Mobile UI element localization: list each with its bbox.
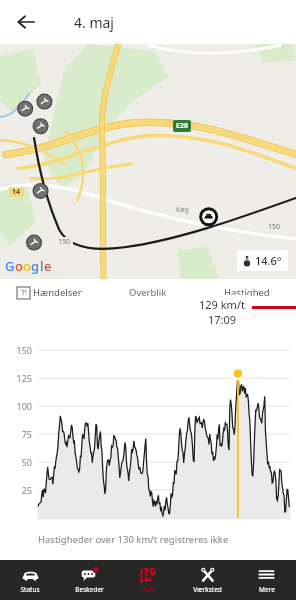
- button[interactable]: Ture: [119, 560, 178, 600]
- staticText: 14: [12, 187, 21, 197]
- staticText: Hændelser: [33, 286, 82, 299]
- button[interactable]: Status: [0, 560, 60, 600]
- staticText: g: [31, 257, 40, 275]
- staticText: 129 km/t: [199, 297, 245, 312]
- staticText: 150: [268, 222, 281, 232]
- staticText: 25: [8, 484, 32, 496]
- button[interactable]: Mere: [237, 560, 296, 600]
- staticText: 7!: [21, 288, 27, 298]
- staticText: Ture: [142, 585, 156, 594]
- staticText: 14.6°: [255, 253, 282, 268]
- staticText: E20: [176, 121, 188, 131]
- button[interactable]: Back: [8, 4, 44, 40]
- staticText: o: [23, 257, 31, 275]
- button[interactable]: 7!: [0, 279, 98, 306]
- staticText: 150: [58, 237, 71, 247]
- staticText: Hastighed: [224, 286, 270, 299]
- button[interactable]: 14.6°: [237, 250, 288, 271]
- staticText: Beskeder: [75, 585, 104, 594]
- staticText: e: [44, 257, 52, 275]
- button[interactable]: Værksted: [178, 560, 237, 600]
- staticText: Overblik: [129, 286, 167, 299]
- staticText: 17:09: [208, 312, 237, 327]
- staticText: 100: [8, 400, 32, 412]
- staticText: 75: [8, 428, 32, 440]
- button[interactable]: Overblik: [98, 279, 197, 306]
- staticText: l: [40, 257, 44, 275]
- staticText: G: [5, 257, 15, 275]
- button[interactable]: Beskeder: [60, 560, 119, 600]
- staticText: 125: [8, 372, 32, 384]
- staticText: 150: [8, 344, 32, 356]
- staticText: Status: [20, 585, 40, 594]
- button[interactable]: Hastighed: [197, 279, 296, 306]
- staticText: Hastigheder over 130 km/t registreres ik…: [38, 533, 229, 546]
- staticText: Værksted: [193, 585, 222, 594]
- staticText: Mere: [259, 585, 275, 594]
- staticText: Køg: [176, 205, 189, 215]
- staticText: o: [15, 257, 23, 275]
- staticText: 4. maj: [74, 13, 114, 32]
- staticText: 50: [8, 456, 32, 468]
